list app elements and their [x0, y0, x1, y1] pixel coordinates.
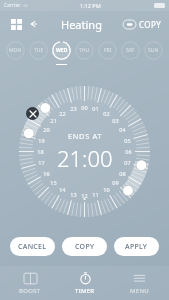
- button[interactable]: TIMER: [61, 266, 109, 300]
- staticText: WED: [56, 47, 68, 54]
- button[interactable]: MON: [5, 41, 26, 65]
- staticText: 15: [50, 179, 57, 186]
- staticText: 03: [112, 117, 119, 124]
- staticText: THU: [79, 47, 90, 54]
- staticText: 22: [59, 110, 66, 117]
- staticText: 23: [70, 105, 77, 112]
- staticText: 10: [103, 186, 110, 193]
- staticText: 14: [59, 186, 66, 193]
- staticText: 05: [124, 137, 131, 144]
- button[interactable]: FRI: [97, 41, 118, 65]
- staticText: 00: [81, 104, 88, 111]
- button[interactable]: COPY: [62, 237, 107, 256]
- staticText: COPY: [75, 242, 95, 252]
- button[interactable]: SAT: [120, 41, 141, 65]
- staticText: 09: [112, 179, 119, 186]
- staticText: Carrier: [4, 2, 21, 9]
- staticText: SUN: [148, 47, 159, 54]
- staticText: 13: [70, 191, 77, 198]
- staticText: 07: [124, 159, 131, 166]
- staticText: 19: [38, 137, 45, 144]
- staticText: 06: [125, 148, 132, 155]
- staticText: 20: [43, 126, 50, 133]
- staticText: SAT: [126, 47, 135, 54]
- staticText: CANCEL: [18, 242, 47, 252]
- staticText: COPY: [139, 19, 162, 30]
- staticText: 21:00: [57, 143, 113, 173]
- staticText: 21: [50, 117, 57, 124]
- button[interactable]: Rooms grid: [7, 15, 25, 33]
- button[interactable]: APPLY: [114, 237, 159, 256]
- staticText: MON: [9, 47, 22, 54]
- staticText: 17: [38, 159, 45, 166]
- staticText: 02: [103, 110, 110, 117]
- staticText: 08: [119, 170, 126, 177]
- staticText: 16: [43, 170, 50, 177]
- staticText: 11: [92, 191, 99, 198]
- staticText: 01: [92, 105, 99, 112]
- button[interactable]: Remove schedule: [26, 107, 39, 120]
- button[interactable]: WED: [51, 41, 72, 65]
- staticText: 12: [81, 192, 88, 199]
- staticText: 04: [119, 126, 126, 133]
- button[interactable]: Back: [25, 16, 41, 32]
- staticText: 1:12 PM: [80, 2, 101, 9]
- staticText: MENU: [130, 287, 149, 295]
- staticText: Heating: [61, 17, 102, 32]
- staticText: ENDS AT: [68, 131, 103, 141]
- staticText: 18: [37, 148, 44, 155]
- button[interactable]: CANCEL: [10, 237, 55, 256]
- button[interactable]: THU: [74, 41, 95, 65]
- button[interactable]: BOOST: [6, 266, 54, 300]
- staticText: APPLY: [125, 242, 148, 252]
- staticText: BOOST: [19, 287, 41, 295]
- button[interactable]: TUE: [28, 41, 49, 65]
- button[interactable]: SUN: [143, 41, 164, 65]
- button[interactable]: MENU: [115, 266, 163, 300]
- staticText: TUE: [34, 47, 44, 54]
- button[interactable]: COPY: [123, 19, 162, 30]
- staticText: FRI: [104, 47, 112, 54]
- staticText: TIMER: [75, 287, 95, 295]
